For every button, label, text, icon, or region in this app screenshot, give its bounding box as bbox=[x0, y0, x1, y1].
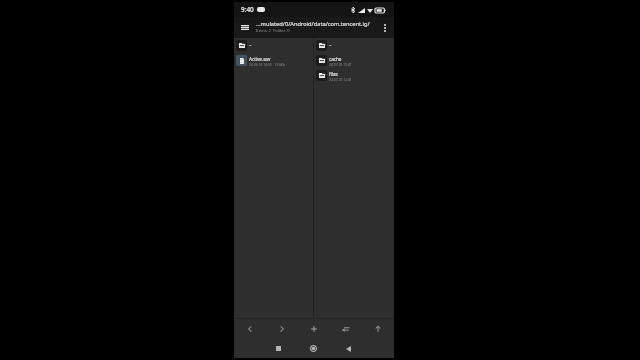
button[interactable]: .. bbox=[234, 38, 313, 53]
staticText: .. bbox=[249, 41, 252, 47]
staticText: Active.sav bbox=[249, 56, 271, 62]
staticText: files bbox=[329, 71, 338, 77]
button[interactable]: Go up bbox=[362, 319, 394, 339]
staticText: ...mulated/0/Android/data/com.tencent.ig… bbox=[256, 20, 370, 28]
button[interactable]: More options bbox=[375, 17, 394, 38]
button[interactable]: cache bbox=[314, 53, 394, 68]
button[interactable]: Navigate back bbox=[234, 319, 266, 339]
button[interactable]: Navigate forward bbox=[266, 319, 298, 339]
button[interactable]: Active.sav bbox=[234, 53, 313, 68]
staticText: 24-07-25 12:41 bbox=[329, 62, 352, 66]
staticText: .. bbox=[329, 41, 332, 47]
button[interactable]: Recent apps bbox=[261, 339, 296, 358]
button[interactable]: files bbox=[314, 68, 394, 83]
staticText: cache bbox=[329, 56, 342, 62]
staticText: 9:40 bbox=[241, 5, 254, 14]
button[interactable]: Menu bbox=[234, 17, 255, 38]
button[interactable]: Transfer bbox=[330, 319, 362, 339]
staticText: 24-07-25 12:41 bbox=[329, 77, 352, 81]
button[interactable]: Home bbox=[296, 339, 331, 358]
staticText: Items: 2 Folder: 0 bbox=[256, 28, 290, 33]
staticText: 24-06-16 14:53 13.6Kb bbox=[249, 62, 285, 66]
button[interactable]: Back bbox=[331, 339, 366, 358]
button[interactable]: Add bbox=[298, 319, 330, 339]
button[interactable]: .. bbox=[314, 38, 394, 53]
